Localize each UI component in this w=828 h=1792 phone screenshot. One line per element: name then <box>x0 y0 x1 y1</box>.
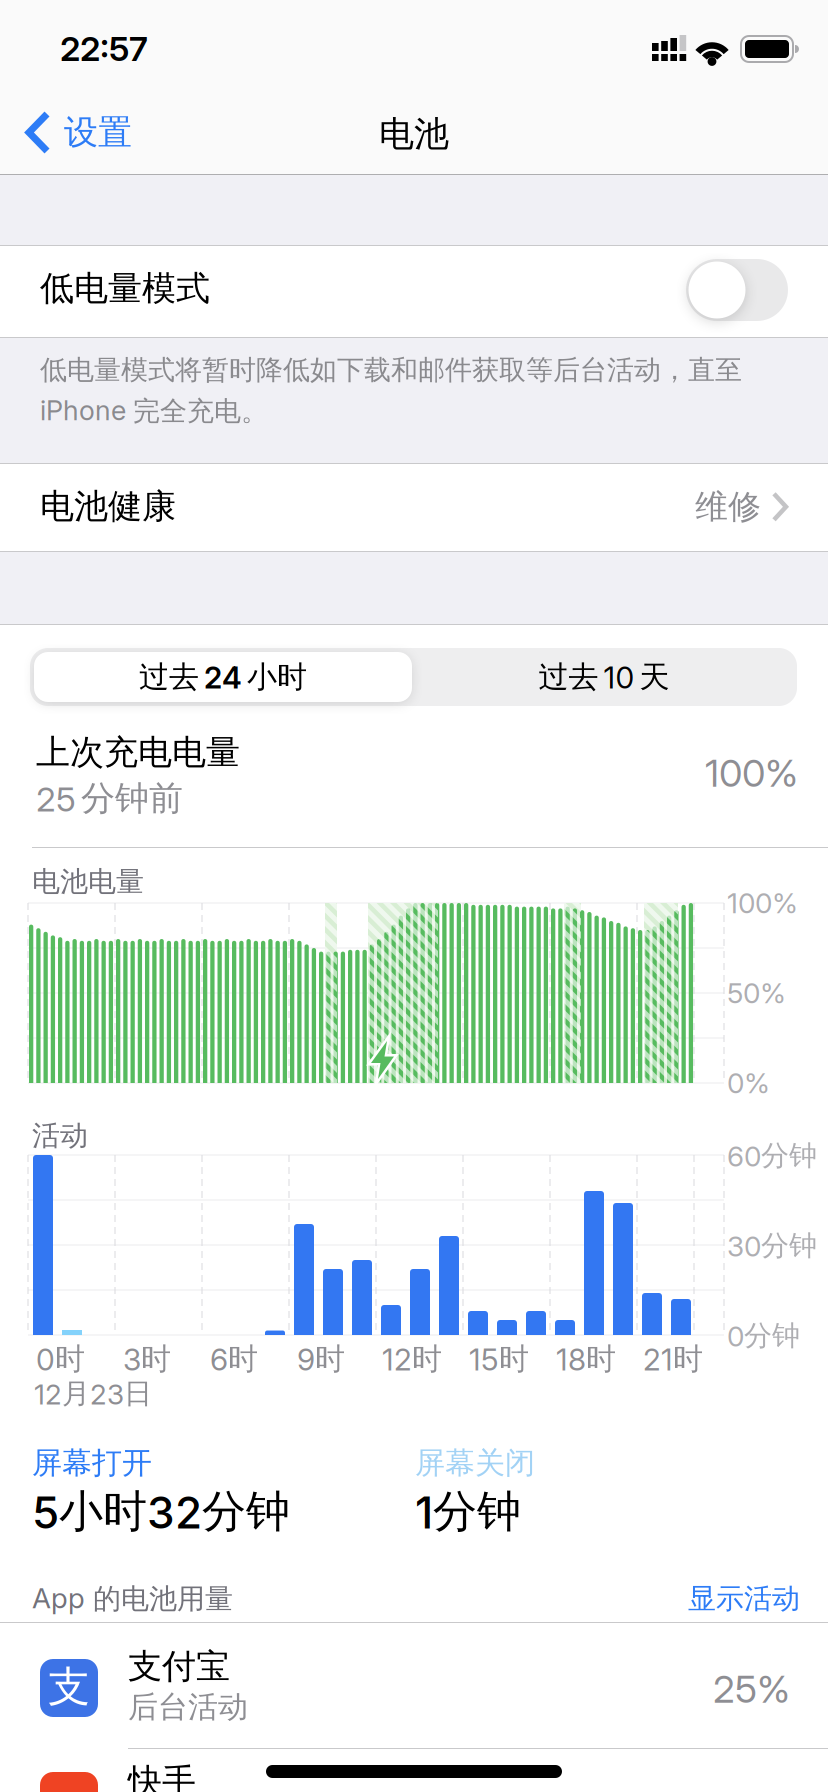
staticText: 0分钟 <box>727 1318 800 1353</box>
staticText: 60分钟 <box>727 1138 817 1173</box>
staticText: 15时 <box>469 1340 529 1378</box>
staticText: 12时 <box>382 1340 442 1378</box>
button[interactable]: 过去 24 小时 <box>34 652 412 702</box>
staticText: 9时 <box>297 1340 345 1378</box>
staticText: 12月23日 <box>34 1376 152 1411</box>
staticText: 过去 24 小时 <box>139 658 307 696</box>
staticText: 支付宝 <box>128 1645 230 1688</box>
button[interactable]: 返回设置 <box>24 110 132 155</box>
staticText: 100% <box>727 886 798 920</box>
staticText: 过去 10 天 <box>538 658 669 696</box>
staticText: 屏幕打开 <box>32 1444 152 1482</box>
staticText: 18时 <box>556 1340 616 1378</box>
staticText: 后台活动 <box>128 1688 248 1726</box>
staticText: 0时 <box>36 1340 85 1378</box>
button[interactable]: 电池健康 <box>0 464 828 551</box>
staticText: 电池电量 <box>32 864 144 899</box>
button[interactable]: 快手 <box>0 1748 828 1792</box>
button[interactable]: 过去 10 天 <box>414 648 794 706</box>
staticText: App 的电池用量 <box>32 1581 233 1616</box>
staticText: 显示活动 <box>688 1581 800 1616</box>
staticText: 活动 <box>32 1118 88 1153</box>
staticText: 上次充电电量 <box>36 731 240 774</box>
button[interactable]: 低电量模式 <box>0 246 828 337</box>
button[interactable]: 支 <box>0 1622 828 1748</box>
staticText: 电池 <box>379 112 449 156</box>
staticText: 25 分钟前 <box>36 777 183 820</box>
staticText: 22:57 <box>60 28 148 69</box>
staticText: 0% <box>727 1066 770 1100</box>
staticText: 支 <box>48 1660 90 1713</box>
staticText: 快手 <box>128 1760 196 1792</box>
staticText: 电池健康 <box>40 485 176 528</box>
staticText: 维修 <box>695 486 761 528</box>
staticText: 50% <box>727 976 786 1010</box>
staticText: 屏幕关闭 <box>415 1444 535 1482</box>
staticText: 设置 <box>64 111 132 154</box>
button[interactable]: 显示活动 <box>0 1581 800 1616</box>
staticText: iPhone 完全充电。 <box>40 394 268 428</box>
staticText: 1分钟 <box>415 1484 521 1539</box>
staticText: 30分钟 <box>727 1228 817 1263</box>
staticText: 25% <box>713 1666 790 1712</box>
staticText: 100% <box>705 750 798 796</box>
staticText: 低电量模式将暂时降低如下载和邮件获取等后台活动，直至 <box>40 353 742 387</box>
staticText: 5小时32分钟 <box>32 1484 290 1539</box>
staticText: 3时 <box>123 1340 171 1378</box>
staticText: 6时 <box>210 1340 258 1378</box>
staticText: 21时 <box>643 1340 703 1378</box>
staticText: 低电量模式 <box>40 267 210 310</box>
